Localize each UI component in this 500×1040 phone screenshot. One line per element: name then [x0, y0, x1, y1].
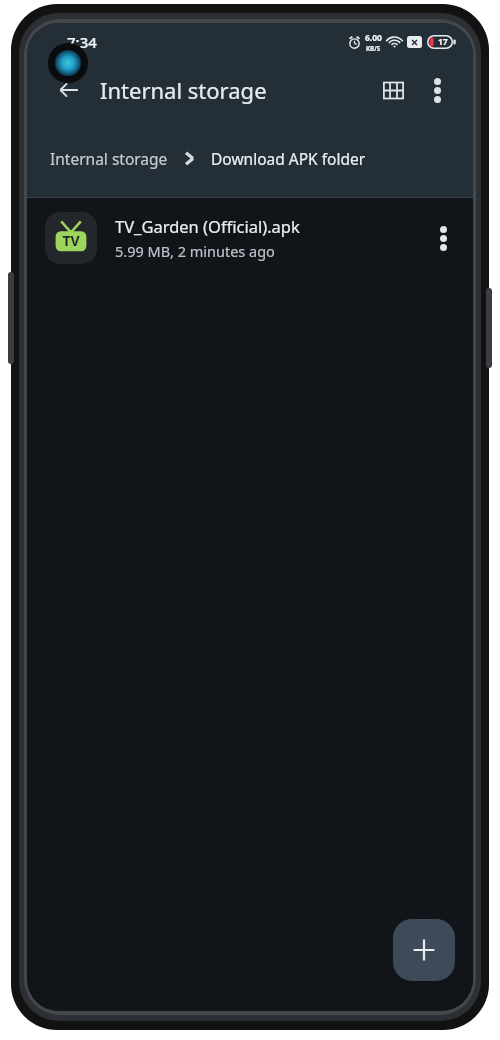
staticText: Download APK folder: [211, 148, 366, 169]
button[interactable]: File options: [421, 216, 465, 260]
staticText: TV_Garden (Official).apk: [115, 215, 300, 237]
button[interactable]: Back: [47, 68, 91, 112]
button[interactable]: TV: [27, 198, 473, 278]
button[interactable]: More options: [415, 68, 459, 112]
staticText: 7:34: [67, 32, 97, 52]
button[interactable]: Grid view: [371, 68, 415, 112]
staticText: Internal storage: [50, 148, 168, 169]
button[interactable]: Download APK folder: [209, 142, 368, 175]
staticText: 17: [438, 36, 448, 48]
staticText: Internal storage: [100, 75, 267, 105]
button[interactable]: Add: [393, 919, 455, 981]
staticText: TV: [62, 231, 80, 250]
staticText: 6.00: [365, 32, 382, 44]
staticText: KB/S: [366, 44, 381, 52]
button[interactable]: Internal storage: [48, 142, 170, 175]
staticText: 5.99 MB, 2 minutes ago: [115, 241, 275, 261]
